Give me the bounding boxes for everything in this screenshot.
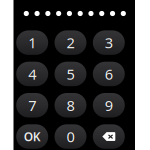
staticText: 5 [66,64,74,84]
staticText: 1 [28,33,36,52]
button[interactable]: 1 [16,30,48,55]
staticText: 7 [28,95,36,115]
staticText: 8 [66,95,74,115]
staticText: 9 [105,95,113,115]
staticText: 4 [28,64,36,84]
button[interactable]: 2 [54,30,86,55]
button[interactable]: 9 [93,93,125,117]
button[interactable]: 4 [16,62,48,86]
staticText: OK [24,129,41,144]
staticText: 6 [105,64,113,84]
staticText: 2 [66,33,74,52]
button[interactable]: 5 [54,62,86,86]
button[interactable]: 8 [54,93,86,117]
button[interactable]: 0 [54,124,86,149]
staticText: 0 [66,127,74,146]
button[interactable]: 3 [93,30,125,55]
button[interactable]: Delete [93,124,125,149]
button[interactable]: OK [16,124,48,149]
button[interactable]: 6 [93,62,125,86]
staticText: 3 [105,33,113,52]
button[interactable]: 7 [16,93,48,117]
